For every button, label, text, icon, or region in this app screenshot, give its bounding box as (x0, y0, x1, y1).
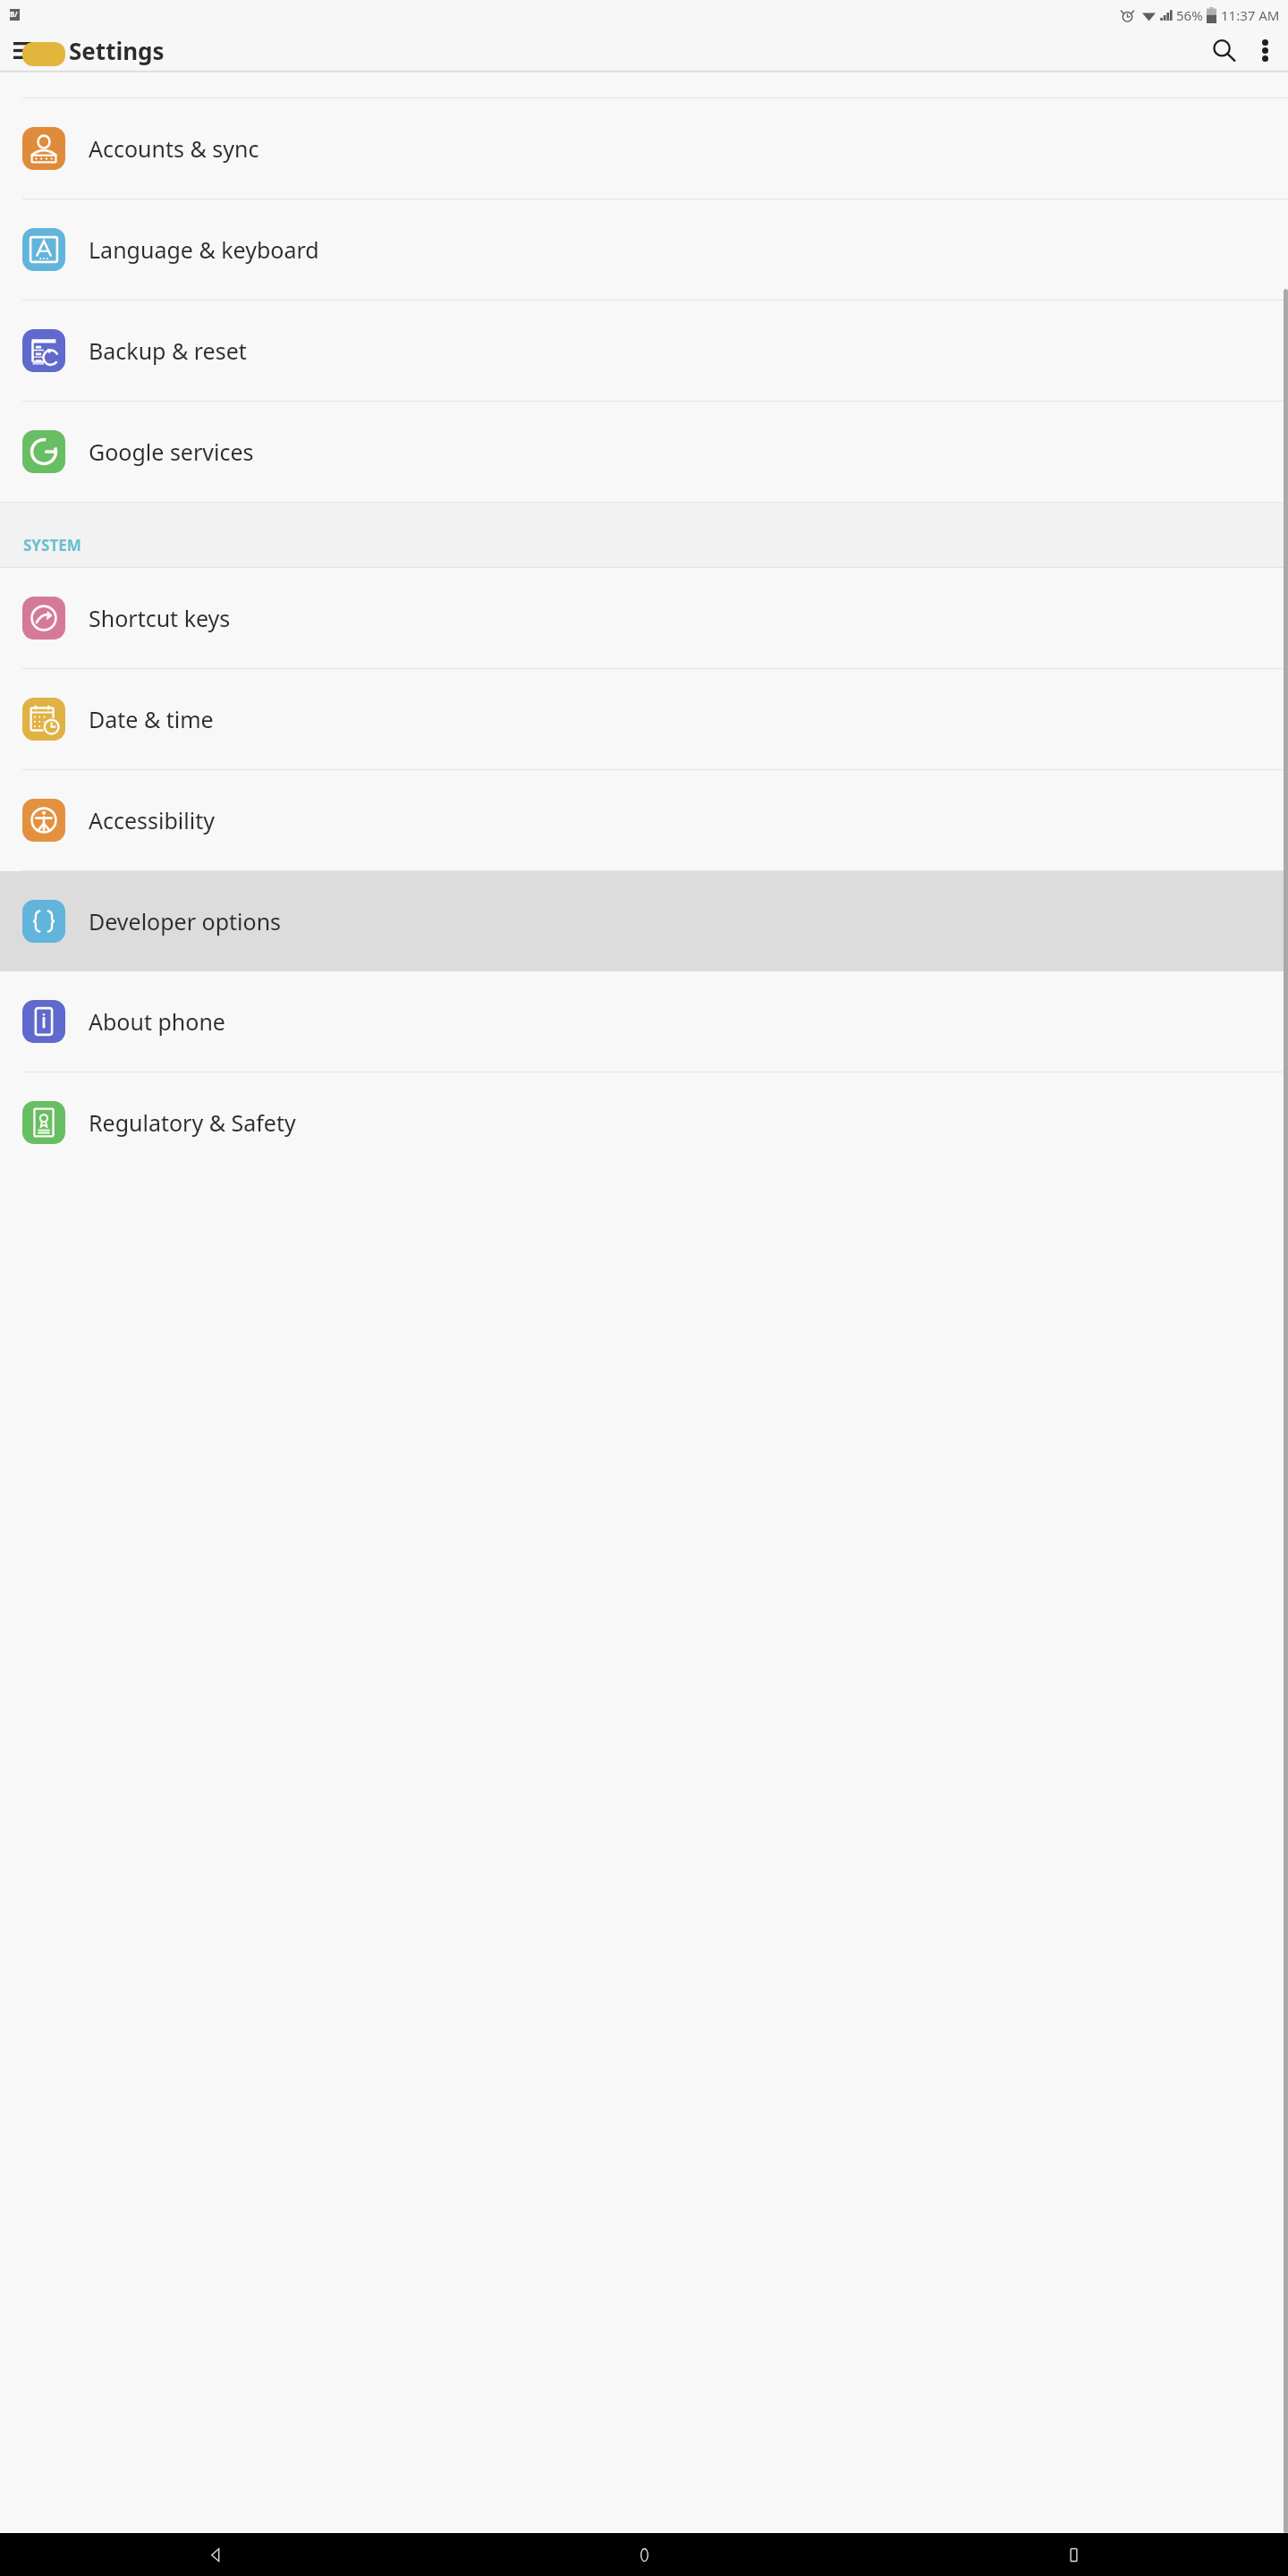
staticText: B/R (10, 9, 20, 21)
button[interactable]: Recent apps (859, 2533, 1288, 2576)
staticText: Google services (89, 436, 254, 467)
button[interactable]: More options (1245, 30, 1284, 70)
button[interactable]: Backup & reset (0, 301, 1288, 401)
staticText: Regulatory & Safety (89, 1107, 296, 1138)
staticText: 56% (1176, 6, 1203, 24)
button[interactable]: Developer options (0, 871, 1288, 971)
staticText: Settings (69, 35, 165, 66)
staticText: SYSTEM (23, 535, 81, 555)
staticText: Language & keyboard (89, 234, 319, 265)
staticText: Developer options (89, 906, 282, 936)
staticText: Accounts & sync (89, 133, 259, 164)
button[interactable]: Accounts & sync (0, 98, 1288, 199)
staticText: Date & time (89, 704, 214, 734)
staticText: Shortcut keys (89, 603, 231, 633)
staticText: Backup & reset (89, 335, 247, 366)
button[interactable]: Regulatory & Safety (0, 1072, 1288, 1173)
button[interactable]: Navigation drawer (7, 32, 43, 68)
staticText: Accessibility (89, 805, 215, 835)
button[interactable]: About phone (0, 971, 1288, 1072)
staticText: About phone (89, 1006, 225, 1037)
button[interactable]: Search (1202, 30, 1245, 71)
button[interactable]: Language & keyboard (0, 199, 1288, 300)
button[interactable]: Back (0, 2533, 429, 2576)
button[interactable]: Home (429, 2533, 859, 2576)
staticText: 11:37 AM (1221, 6, 1280, 24)
button[interactable]: Accessibility (0, 770, 1288, 870)
button[interactable]: Date & time (0, 669, 1288, 769)
button[interactable]: Shortcut keys (0, 568, 1288, 668)
button[interactable]: Google services (0, 402, 1288, 502)
